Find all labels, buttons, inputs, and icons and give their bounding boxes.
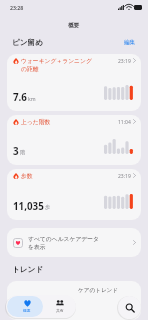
staticText: 編集 bbox=[124, 39, 136, 46]
staticText: 23:19 bbox=[118, 173, 131, 180]
staticText: 11,035 bbox=[13, 200, 44, 213]
staticText: トレンド bbox=[12, 265, 44, 275]
button[interactable]: すべてのヘルスケアデータ を表示 bbox=[7, 228, 141, 257]
button[interactable]: 概要 bbox=[7, 296, 43, 317]
staticText: km bbox=[28, 95, 36, 102]
button[interactable]: 共有 bbox=[44, 295, 76, 318]
button[interactable]: 歩数 bbox=[7, 169, 141, 220]
staticText: すべてのヘルスケアデータ を表示 bbox=[28, 235, 133, 250]
button[interactable]: 編集 bbox=[124, 39, 136, 46]
staticText: ケアのトレンド bbox=[78, 287, 119, 294]
staticText: 11:04 bbox=[118, 119, 131, 126]
staticText: 概要 bbox=[68, 22, 80, 29]
staticText: 階 bbox=[20, 149, 26, 156]
button[interactable]: ケアのトレンド bbox=[7, 281, 141, 320]
staticText: 23:19 bbox=[118, 58, 131, 65]
staticText: 7.6 bbox=[13, 91, 27, 104]
staticText: ピン留め bbox=[12, 38, 43, 47]
button[interactable]: Search bbox=[118, 296, 141, 319]
staticText: 3 bbox=[13, 145, 19, 158]
staticText: 23:28 bbox=[10, 4, 24, 11]
staticText: 上った階数 bbox=[21, 118, 118, 125]
staticText: 歩数 bbox=[21, 172, 118, 179]
staticText: 概要 bbox=[23, 308, 31, 313]
staticText: ウォーキング＋ランニング の距離 bbox=[21, 57, 118, 72]
staticText: 共有 bbox=[56, 308, 64, 313]
button[interactable]: ウォーキング＋ランニング の距離 bbox=[7, 54, 141, 111]
staticText: 歩 bbox=[45, 204, 51, 211]
button[interactable]: 上った階数 bbox=[7, 115, 141, 165]
